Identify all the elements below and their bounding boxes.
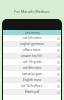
staticText: samanya gyan [22,72,43,76]
other: Open [56,36,61,41]
other: Open [56,60,61,65]
staticText: std 6th notes [23,36,42,40]
other: Open [56,54,61,59]
button[interactable]: answer key 5th [3,53,61,59]
button[interactable]: English trans [3,77,61,83]
staticText: affairs notes [23,48,41,52]
button[interactable]: Maths pdf [3,89,61,95]
other: Open [56,66,61,71]
button[interactable]: std 6th notes [3,35,61,41]
other: Open [56,84,61,89]
other: Open [56,42,61,47]
staticText: unit menu [25,31,40,35]
button[interactable]: std 12th affairs [3,83,61,89]
button[interactable]: affairs notes [3,47,61,53]
staticText: std 8th notes [23,66,42,70]
button[interactable]: std 8th notes [3,65,61,71]
button[interactable]: unit menu [3,30,61,35]
button[interactable]: std 7th guide [3,59,61,65]
staticText: english grammar [20,42,45,46]
staticText: English trans [23,78,42,82]
staticText: std 12th affairs [21,84,43,88]
other: Open [56,78,61,83]
staticText: Maths pdf [25,90,40,94]
button[interactable]: english grammar [3,41,61,47]
other: Open [56,90,61,95]
other: Open [56,72,61,77]
staticText: std 7th guide [23,60,42,64]
staticText: For Marathi Medium [0,9,64,14]
other: Open [56,48,61,53]
staticText: answer key 5th [21,54,43,58]
button[interactable]: samanya gyan [3,71,61,77]
